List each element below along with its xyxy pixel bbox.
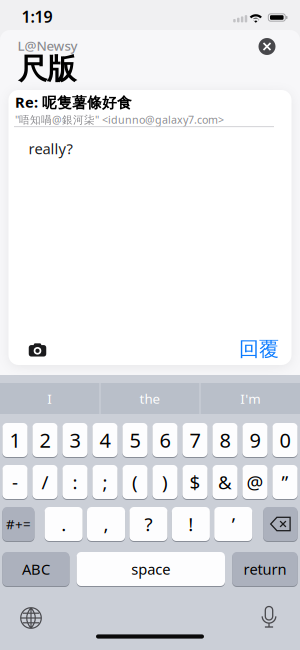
staticText: 4	[99, 427, 110, 453]
staticText: 7	[189, 427, 200, 453]
button[interactable]: /	[32, 465, 58, 499]
button[interactable]: -	[2, 465, 28, 499]
staticText: return	[243, 559, 286, 579]
staticText: 0	[279, 427, 290, 453]
button[interactable]: 6	[152, 423, 178, 457]
button[interactable]	[20, 607, 42, 629]
button[interactable]: ;	[92, 465, 118, 499]
staticText: )	[162, 470, 168, 494]
staticText: ?	[144, 512, 152, 536]
staticText: /	[41, 470, 48, 494]
staticText: @	[246, 470, 263, 494]
button[interactable]: 回覆	[239, 337, 279, 361]
button[interactable]: &	[212, 465, 238, 499]
staticText: 1	[9, 427, 20, 453]
button[interactable]: 5	[122, 423, 148, 457]
staticText: :	[72, 470, 77, 494]
button[interactable]: ’	[214, 507, 252, 541]
button[interactable]: 1	[2, 423, 28, 457]
staticText: 回覆	[239, 337, 279, 361]
button[interactable]: @	[242, 465, 268, 499]
button[interactable]	[263, 507, 298, 541]
button[interactable]: )	[152, 465, 178, 499]
button[interactable]: .	[45, 507, 83, 541]
button[interactable]: space	[77, 552, 225, 586]
staticText: ABC	[22, 559, 50, 579]
staticText: "唔知喎@銀河柒" <idunno@galaxy7.com>	[15, 112, 224, 127]
button[interactable]: 3	[62, 423, 88, 457]
staticText: L@Newsy	[17, 37, 77, 54]
button[interactable]: 4	[92, 423, 118, 457]
staticText: (	[132, 470, 138, 494]
staticText: 3	[69, 427, 80, 453]
button[interactable]: 8	[212, 423, 238, 457]
button[interactable]	[258, 38, 275, 55]
staticText: 8	[219, 427, 230, 453]
button[interactable]: ?	[129, 507, 167, 541]
staticText: 尺版	[18, 51, 76, 87]
staticText: 6	[159, 427, 170, 453]
staticText: ’	[232, 512, 235, 536]
button[interactable]: :	[62, 465, 88, 499]
staticText: $	[189, 470, 200, 494]
staticText: 5	[129, 427, 140, 453]
staticText: ”	[281, 470, 288, 494]
staticText: &	[218, 470, 232, 494]
button[interactable]: 0	[272, 423, 298, 457]
staticText: 1:19	[21, 6, 52, 27]
button[interactable]	[26, 341, 48, 359]
staticText: 9	[249, 427, 260, 453]
staticText: .	[61, 512, 66, 536]
staticText: really?	[28, 139, 72, 158]
button[interactable]: the	[100, 383, 199, 414]
button[interactable]: ”	[272, 465, 298, 499]
button[interactable]: ,	[87, 507, 125, 541]
staticText: ,	[103, 512, 108, 536]
staticText: Re: 呢隻薯條好食	[15, 92, 132, 112]
button[interactable]: 2	[32, 423, 58, 457]
staticText: ;	[102, 470, 107, 494]
button[interactable]: (	[122, 465, 148, 499]
button[interactable]: I'm	[201, 383, 300, 414]
button[interactable]: 9	[242, 423, 268, 457]
staticText: I'm	[240, 390, 260, 407]
button[interactable]: 7	[182, 423, 208, 457]
button[interactable]	[261, 606, 277, 629]
staticText: 2	[39, 427, 50, 453]
staticText: space	[131, 559, 170, 579]
button[interactable]: !	[172, 507, 210, 541]
staticText: !	[188, 512, 193, 536]
button[interactable]: ABC	[2, 552, 69, 586]
staticText: the	[139, 390, 160, 407]
staticText: I	[47, 390, 52, 407]
staticText: -	[12, 470, 18, 494]
button[interactable]: #+=	[2, 507, 34, 541]
button[interactable]: $	[182, 465, 208, 499]
button[interactable]: return	[232, 552, 298, 586]
staticText: #+=	[6, 515, 31, 533]
button[interactable]: I	[0, 383, 99, 414]
